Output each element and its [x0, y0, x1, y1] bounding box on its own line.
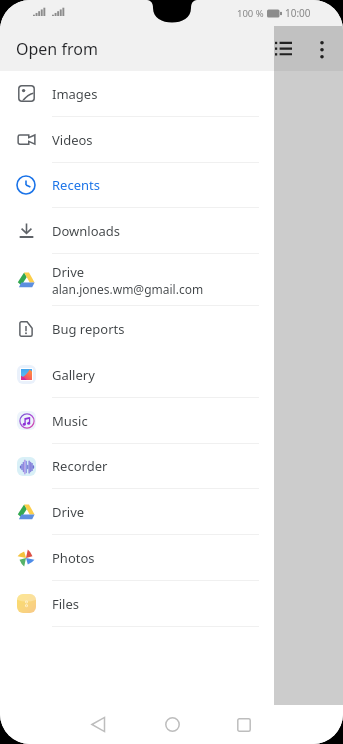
staticText: alan.jones.wm@gmail.com	[52, 281, 204, 297]
button[interactable]: Downloads	[0, 208, 343, 254]
staticText: 10:00	[285, 6, 311, 20]
button[interactable]: Gallery	[0, 352, 343, 398]
staticText: Bug reports	[52, 320, 125, 338]
staticText: Recorder	[52, 457, 108, 475]
button[interactable]: Files	[0, 581, 343, 627]
staticText: Drive	[52, 503, 85, 521]
button[interactable]: Music	[0, 398, 343, 444]
staticText: Images	[52, 85, 98, 103]
button[interactable]: Drive	[0, 489, 343, 535]
button[interactable]: Home	[152, 705, 192, 744]
staticText: Downloads	[52, 222, 121, 240]
button[interactable]: Recorder	[0, 444, 343, 489]
button[interactable]: Drive	[0, 254, 343, 306]
staticText: 100 %	[237, 7, 264, 20]
button[interactable]: List view	[263, 28, 303, 68]
button[interactable]: Recents	[0, 163, 343, 208]
staticText: Photos	[52, 549, 95, 567]
staticText: Drive	[52, 263, 85, 281]
button[interactable]: Back	[78, 705, 118, 744]
staticText: Gallery	[52, 366, 95, 384]
button[interactable]: Bug reports	[0, 306, 343, 352]
staticText: Files	[52, 595, 80, 613]
staticText: Recents	[52, 176, 100, 194]
button[interactable]: More options	[302, 28, 342, 68]
button[interactable]: Images	[0, 71, 343, 117]
staticText: Videos	[52, 131, 93, 149]
staticText: Music	[52, 412, 88, 430]
staticText: Open from	[16, 38, 98, 60]
button[interactable]: Videos	[0, 117, 343, 163]
button[interactable]: Recent apps	[224, 705, 264, 744]
button[interactable]: Photos	[0, 535, 343, 581]
